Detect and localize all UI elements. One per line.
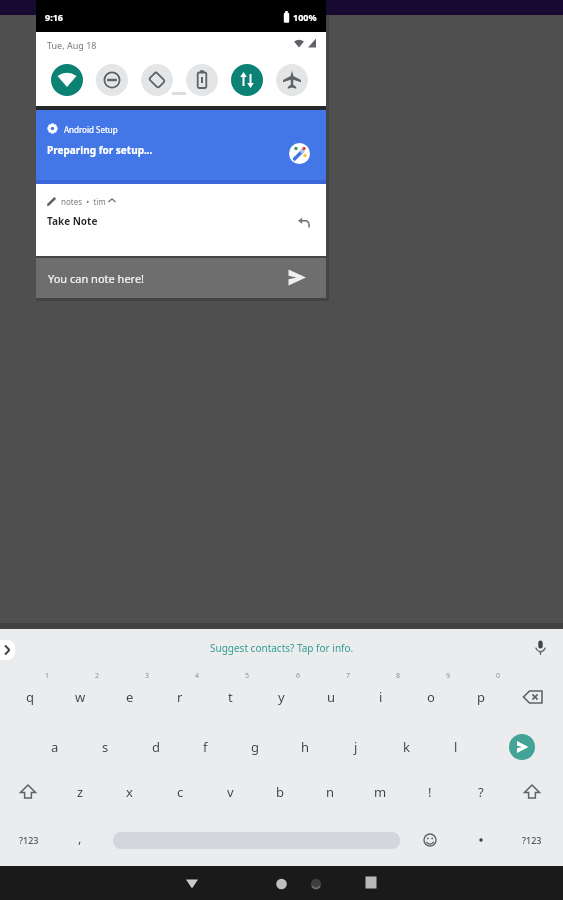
button[interactable]: n	[309, 775, 351, 809]
button[interactable]: z	[59, 775, 101, 809]
button[interactable]: p	[460, 680, 502, 714]
staticText: r	[177, 688, 183, 706]
staticText: ?123	[19, 834, 39, 846]
button[interactable]: j	[335, 730, 377, 764]
staticText: 0	[496, 671, 501, 681]
button[interactable]	[423, 833, 437, 847]
button[interactable]	[534, 640, 547, 656]
button[interactable]: ?123	[512, 830, 552, 850]
button[interactable]	[289, 143, 310, 164]
staticText: f	[203, 738, 208, 756]
button[interactable]: b	[259, 775, 301, 809]
button[interactable]	[186, 64, 218, 96]
staticText: u	[327, 688, 336, 706]
button[interactable]: q	[9, 680, 51, 714]
staticText: l	[454, 738, 458, 756]
staticText: i	[379, 688, 383, 706]
button[interactable]: t	[209, 680, 251, 714]
button[interactable]: i	[360, 680, 402, 714]
button[interactable]: y	[260, 680, 302, 714]
button[interactable]: k	[385, 730, 427, 764]
staticText: m	[374, 783, 387, 801]
button[interactable]	[275, 878, 288, 890]
button[interactable]	[477, 836, 485, 844]
button[interactable]: x	[108, 775, 150, 809]
button[interactable]	[0, 640, 15, 660]
staticText: 8	[396, 671, 401, 681]
staticText: 1	[45, 671, 50, 681]
staticText: 4	[195, 671, 200, 681]
staticText: Tue, Aug 18	[47, 39, 97, 51]
staticText: d	[152, 738, 160, 756]
button[interactable]: f	[184, 730, 226, 764]
staticText: s	[102, 738, 109, 756]
staticText: z	[77, 783, 84, 801]
staticText: h	[301, 738, 310, 756]
button[interactable]	[288, 269, 307, 286]
staticText: 2	[95, 671, 100, 681]
button[interactable]: u	[310, 680, 352, 714]
staticText: 9:16	[45, 11, 63, 23]
button[interactable]	[522, 783, 542, 801]
staticText: y	[278, 688, 285, 706]
staticText: 7	[346, 671, 351, 681]
button[interactable]: h	[284, 730, 326, 764]
button[interactable]: ,	[59, 821, 101, 855]
button[interactable]: d	[135, 730, 177, 764]
staticText: 5	[245, 671, 250, 681]
staticText: 100%	[293, 11, 317, 23]
button[interactable]	[36, 184, 326, 256]
button[interactable]: a	[34, 730, 76, 764]
staticText: g	[251, 738, 259, 756]
staticText: Android Setup	[64, 124, 118, 135]
staticText: t	[228, 688, 233, 706]
staticText: ,	[78, 829, 82, 847]
button[interactable]: ?123	[9, 830, 49, 850]
button[interactable]: l	[435, 730, 477, 764]
button[interactable]	[509, 734, 535, 760]
button[interactable]: Suggest contacts? Tap for info.	[0, 629, 563, 666]
staticText: You can note here!	[48, 271, 145, 286]
staticText: x	[126, 783, 133, 801]
button[interactable]: v	[209, 775, 251, 809]
staticText: v	[227, 783, 234, 801]
button[interactable]	[18, 783, 38, 801]
button[interactable]	[296, 217, 310, 228]
staticText: ?	[478, 783, 484, 801]
button[interactable]	[365, 876, 377, 889]
staticText: q	[26, 688, 34, 706]
staticText: e	[126, 688, 134, 706]
button[interactable]	[96, 64, 128, 96]
button[interactable]	[276, 64, 308, 96]
button[interactable]: w	[59, 680, 101, 714]
button[interactable]: c	[159, 775, 201, 809]
button[interactable]	[231, 64, 263, 96]
staticText: 6	[296, 671, 301, 681]
staticText: Preparing for setup...	[47, 143, 153, 157]
button[interactable]	[520, 685, 546, 709]
button[interactable]	[36, 110, 326, 184]
button[interactable]: !	[409, 775, 451, 809]
button[interactable]: o	[410, 680, 452, 714]
staticText: j	[354, 738, 358, 756]
staticText: w	[75, 688, 86, 706]
staticText: b	[276, 783, 284, 801]
button[interactable]: s	[84, 730, 126, 764]
button[interactable]	[51, 64, 83, 96]
button[interactable]	[141, 64, 173, 96]
button[interactable]: ?	[460, 775, 502, 809]
button[interactable]: e	[109, 680, 151, 714]
staticText: !	[428, 783, 432, 801]
button[interactable]: m	[359, 775, 401, 809]
staticText: 9	[446, 671, 451, 681]
button[interactable]	[36, 258, 326, 298]
staticText: ?123	[522, 834, 542, 846]
button[interactable]	[185, 878, 199, 890]
staticText: Take Note	[47, 214, 98, 228]
button[interactable]: r	[159, 680, 201, 714]
staticText: p	[477, 688, 485, 706]
button[interactable]: g	[234, 730, 276, 764]
staticText: k	[403, 738, 410, 756]
staticText: Suggest contacts? Tap for info.	[210, 641, 354, 655]
